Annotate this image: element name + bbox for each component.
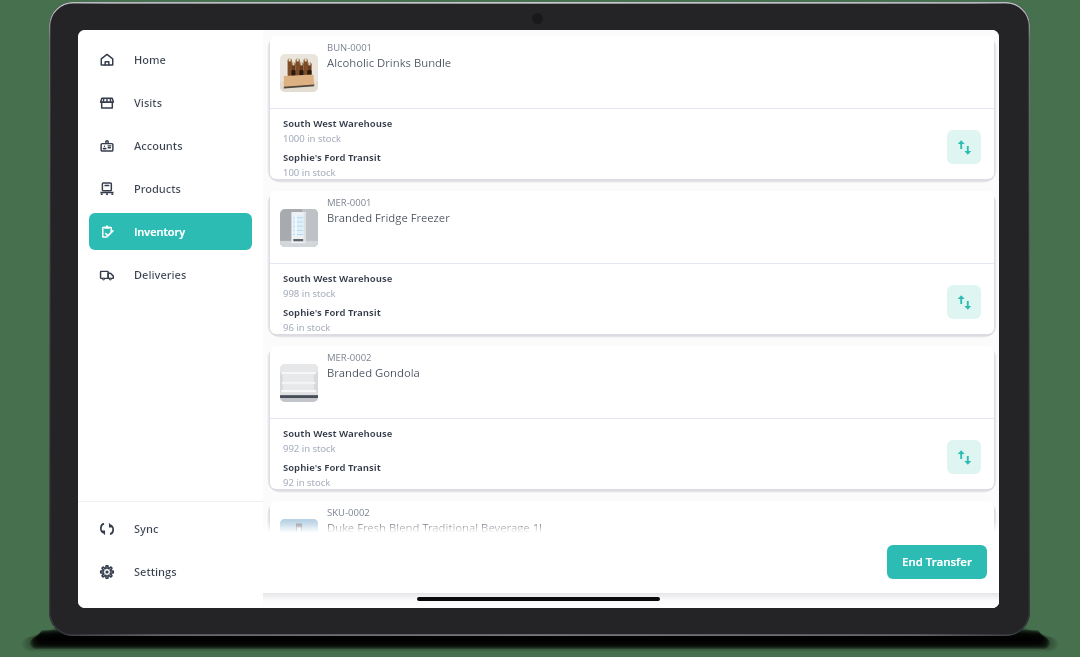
button[interactable]: Products <box>89 170 252 207</box>
staticText: End Transfer <box>902 554 972 570</box>
button[interactable]: Settings <box>89 553 252 590</box>
button[interactable]: Accounts <box>89 127 252 164</box>
staticText: Home <box>134 52 166 67</box>
staticText: Duke Fresh Blend Traditional Beverage 1l <box>327 520 542 535</box>
staticText: Visits <box>134 95 163 110</box>
button[interactable]: Visits <box>89 84 252 121</box>
staticText: Sophie's Ford Transit <box>283 306 381 319</box>
button[interactable]: Transfer stock <box>947 285 981 319</box>
staticText: Sophie's Ford Transit <box>283 461 381 474</box>
staticText: Deliveries <box>134 267 187 282</box>
staticText: 998 in stock <box>283 287 336 300</box>
button[interactable]: End Transfer <box>887 545 987 579</box>
staticText: Inventory <box>134 224 186 239</box>
staticText: Sophie's Ford Transit <box>283 151 381 164</box>
staticText: Products <box>134 181 181 196</box>
button[interactable]: SKU-0002 <box>270 501 994 608</box>
staticText: Branded Gondola <box>327 365 420 380</box>
button[interactable]: Transfer stock <box>947 130 981 164</box>
staticText: South West Warehouse <box>283 272 393 285</box>
staticText: Branded Fridge Freezer <box>327 210 450 225</box>
staticText: MER-0002 <box>327 351 372 364</box>
staticText: Settings <box>134 564 177 579</box>
staticText: 92 in stock <box>283 476 331 489</box>
staticText: 100 in stock <box>283 166 336 179</box>
button[interactable]: Inventory <box>89 213 252 250</box>
staticText: 96 in stock <box>283 321 331 334</box>
staticText: MER-0001 <box>327 196 372 209</box>
staticText: BUN-0001 <box>327 41 373 54</box>
button[interactable]: Sync <box>89 510 252 547</box>
staticText: Alcoholic Drinks Bundle <box>327 55 452 70</box>
button[interactable]: MER-0002 <box>270 346 994 489</box>
staticText: Sync <box>134 521 159 536</box>
staticText: SKU-0002 <box>327 506 370 519</box>
button[interactable]: BUN-0001 <box>270 36 994 179</box>
staticText: 1000 in stock <box>283 132 342 145</box>
button[interactable]: Home <box>89 41 252 78</box>
staticText: South West Warehouse <box>283 427 393 440</box>
button[interactable]: MER-0001 <box>270 191 994 334</box>
button[interactable]: Deliveries <box>89 256 252 293</box>
staticText: South West Warehouse <box>283 117 393 130</box>
staticText: 992 in stock <box>283 442 336 455</box>
button[interactable]: Transfer stock <box>947 440 981 474</box>
staticText: Accounts <box>134 138 183 153</box>
